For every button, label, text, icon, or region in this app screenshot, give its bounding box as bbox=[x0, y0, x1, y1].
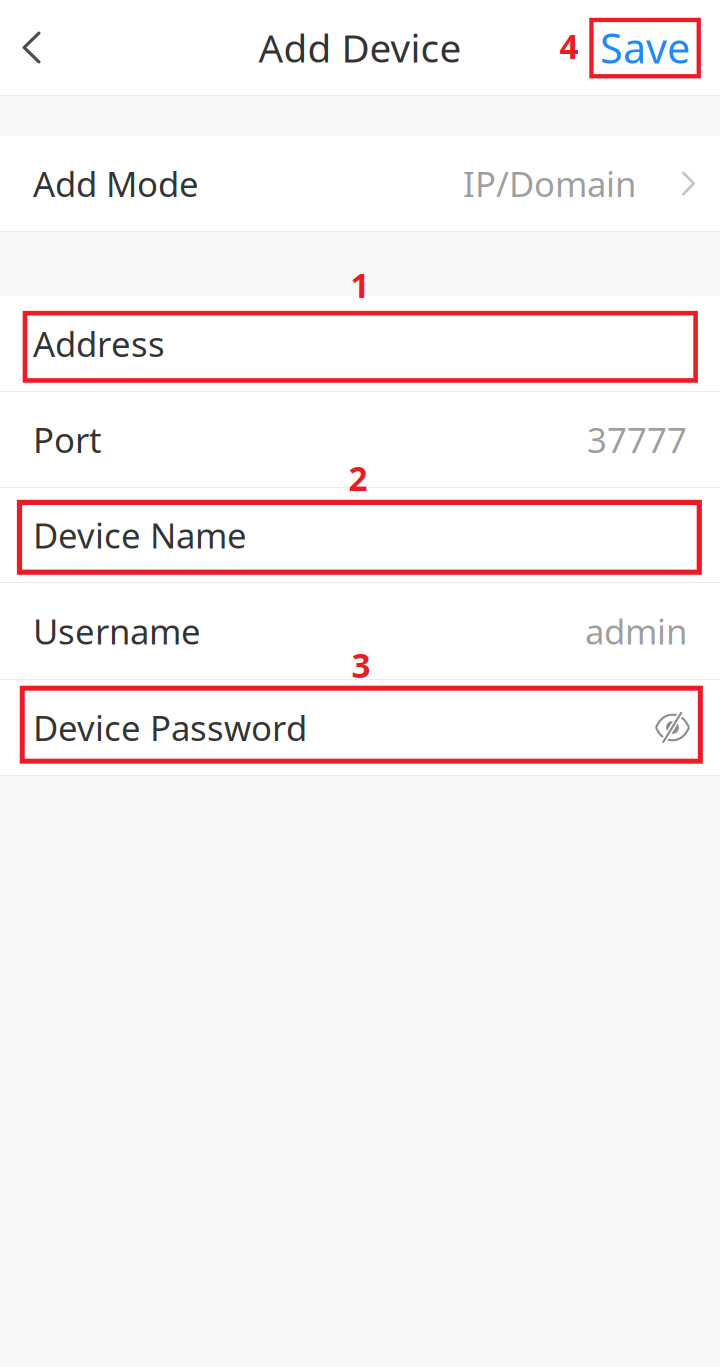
staticText: admin bbox=[585, 608, 687, 654]
staticText: 37777 bbox=[587, 416, 687, 462]
staticText: 3 bbox=[351, 643, 370, 687]
staticText: 4 bbox=[559, 24, 578, 68]
button[interactable]: Device Password bbox=[0, 680, 720, 775]
staticText: IP/Domain bbox=[463, 160, 636, 206]
button[interactable]: Save bbox=[589, 17, 701, 77]
staticText: Port bbox=[33, 416, 102, 462]
staticText: Add Mode bbox=[33, 160, 199, 206]
staticText: Add Device bbox=[258, 22, 461, 73]
button[interactable]: Add Mode bbox=[0, 136, 720, 231]
button[interactable]: Username bbox=[0, 583, 720, 679]
button[interactable]: Port bbox=[0, 392, 720, 487]
staticText: Save bbox=[600, 20, 690, 75]
staticText: Address bbox=[33, 320, 165, 366]
button[interactable]: Back bbox=[0, 0, 63, 95]
staticText: Device Name bbox=[33, 512, 247, 558]
button[interactable]: Device Name bbox=[0, 488, 720, 582]
staticText: 1 bbox=[350, 263, 369, 307]
staticText: 2 bbox=[348, 456, 367, 500]
staticText: Username bbox=[33, 608, 201, 654]
staticText: Device Password bbox=[33, 704, 307, 750]
button[interactable]: Address bbox=[0, 296, 720, 391]
